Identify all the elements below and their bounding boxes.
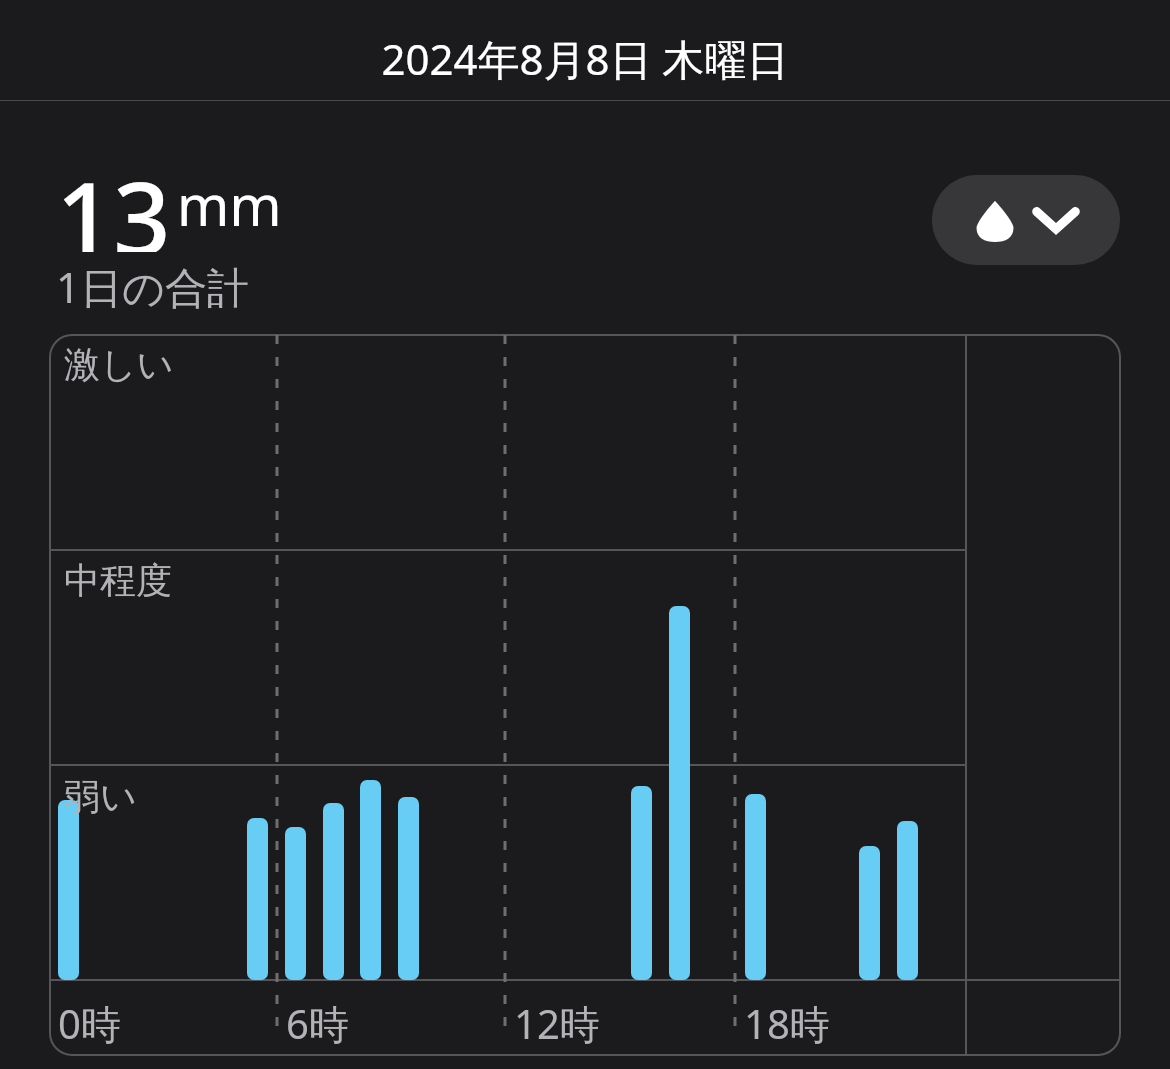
staticText: mm bbox=[177, 166, 282, 242]
staticText: 中程度 bbox=[64, 558, 172, 603]
button[interactable]: 雨量の種類を選択 bbox=[932, 175, 1120, 265]
button[interactable]: 2024年8月8日 木曜日 bbox=[0, 0, 1170, 100]
staticText: 2024年8月8日 木曜日 bbox=[381, 30, 789, 87]
staticText: 18時 bbox=[744, 996, 830, 1051]
staticText: 1日の合計 bbox=[56, 258, 250, 315]
staticText: 12時 bbox=[514, 996, 600, 1051]
staticText: 6時 bbox=[286, 996, 349, 1051]
staticText: 0時 bbox=[58, 996, 121, 1051]
staticText: 13 bbox=[56, 148, 171, 252]
staticText: 弱い bbox=[64, 774, 137, 819]
button[interactable] bbox=[50, 335, 1120, 1055]
staticText: 激しい bbox=[64, 342, 174, 387]
